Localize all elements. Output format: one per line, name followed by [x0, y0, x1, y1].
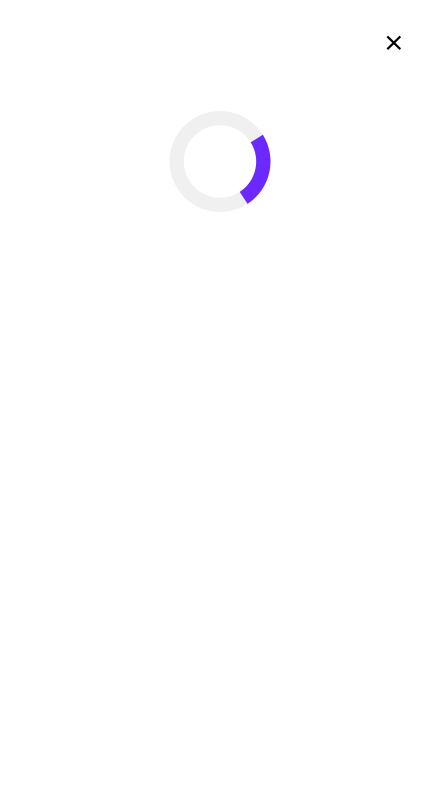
button[interactable]: Close: [372, 21, 416, 65]
